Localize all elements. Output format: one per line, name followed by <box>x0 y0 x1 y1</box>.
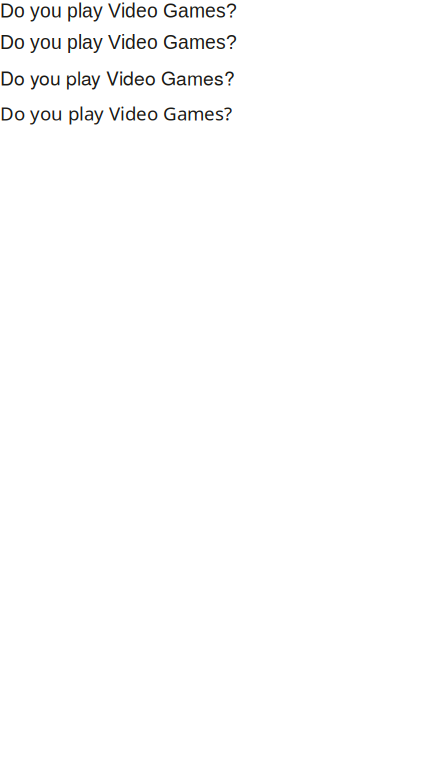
staticText: Do you play Video Games? <box>0 101 232 126</box>
staticText: Do you play Video Games? <box>0 32 237 53</box>
staticText: Do you play Video Games? <box>0 0 237 22</box>
staticText: Do you play Video Games? <box>0 63 235 91</box>
